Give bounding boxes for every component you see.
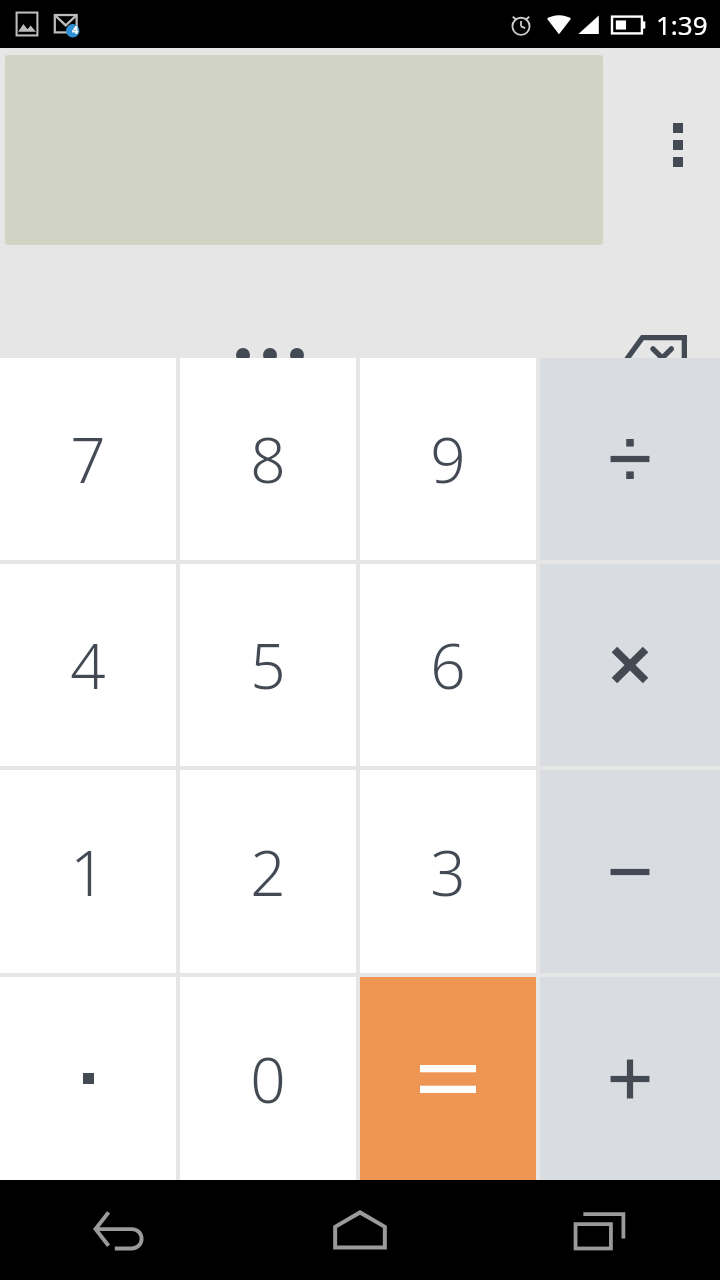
staticText: 1:39 <box>656 7 708 42</box>
button[interactable]: 2 <box>180 770 356 973</box>
button[interactable]: Add <box>540 977 720 1180</box>
button[interactable]: Formula <box>205 323 335 387</box>
staticText: 1 <box>70 830 106 914</box>
button[interactable]: 5 <box>180 564 356 766</box>
staticText: 9 <box>430 417 466 501</box>
button[interactable]: Back <box>0 1180 240 1280</box>
staticText: 8 <box>250 417 286 501</box>
staticText: 6 <box>430 623 466 707</box>
button[interactable]: 7 <box>0 358 176 560</box>
staticText: 0 <box>250 1037 286 1121</box>
button[interactable]: Home <box>240 1180 480 1280</box>
button[interactable]: 1 <box>0 770 176 973</box>
staticText: 2 <box>250 830 286 914</box>
button[interactable]: Equals <box>360 977 536 1180</box>
button[interactable]: Decimal point <box>0 977 176 1180</box>
button[interactable]: Delete <box>614 316 698 400</box>
button[interactable]: Subtract <box>540 770 720 973</box>
staticText: 3 <box>430 830 466 914</box>
button[interactable]: 0 <box>180 977 356 1180</box>
button[interactable]: Recents <box>480 1180 720 1280</box>
button[interactable]: Divide <box>540 358 720 560</box>
button[interactable]: 4 <box>0 564 176 766</box>
button[interactable]: Multiply <box>540 564 720 766</box>
button[interactable]: 6 <box>360 564 536 766</box>
staticText: 4 <box>70 623 106 707</box>
staticText: 7 <box>70 417 106 501</box>
button[interactable]: More options <box>636 103 720 187</box>
button[interactable]: 3 <box>360 770 536 973</box>
staticText: 4 <box>72 22 79 37</box>
button[interactable]: 9 <box>360 358 536 560</box>
staticText: 5 <box>250 623 286 707</box>
button[interactable]: 8 <box>180 358 356 560</box>
